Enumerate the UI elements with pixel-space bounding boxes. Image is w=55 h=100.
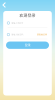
staticText: 登录 xyxy=(24,43,30,47)
button[interactable]: 登录 xyxy=(6,42,49,49)
staticText: 请输入手机号 xyxy=(11,22,23,24)
staticText: 欢迎登录 xyxy=(19,13,35,18)
staticText: 获取验证码 xyxy=(37,33,47,36)
button[interactable]: Back xyxy=(2,2,6,8)
staticText: 请输入验证码 xyxy=(11,33,23,36)
button[interactable]: 获取验证码 xyxy=(37,33,47,36)
